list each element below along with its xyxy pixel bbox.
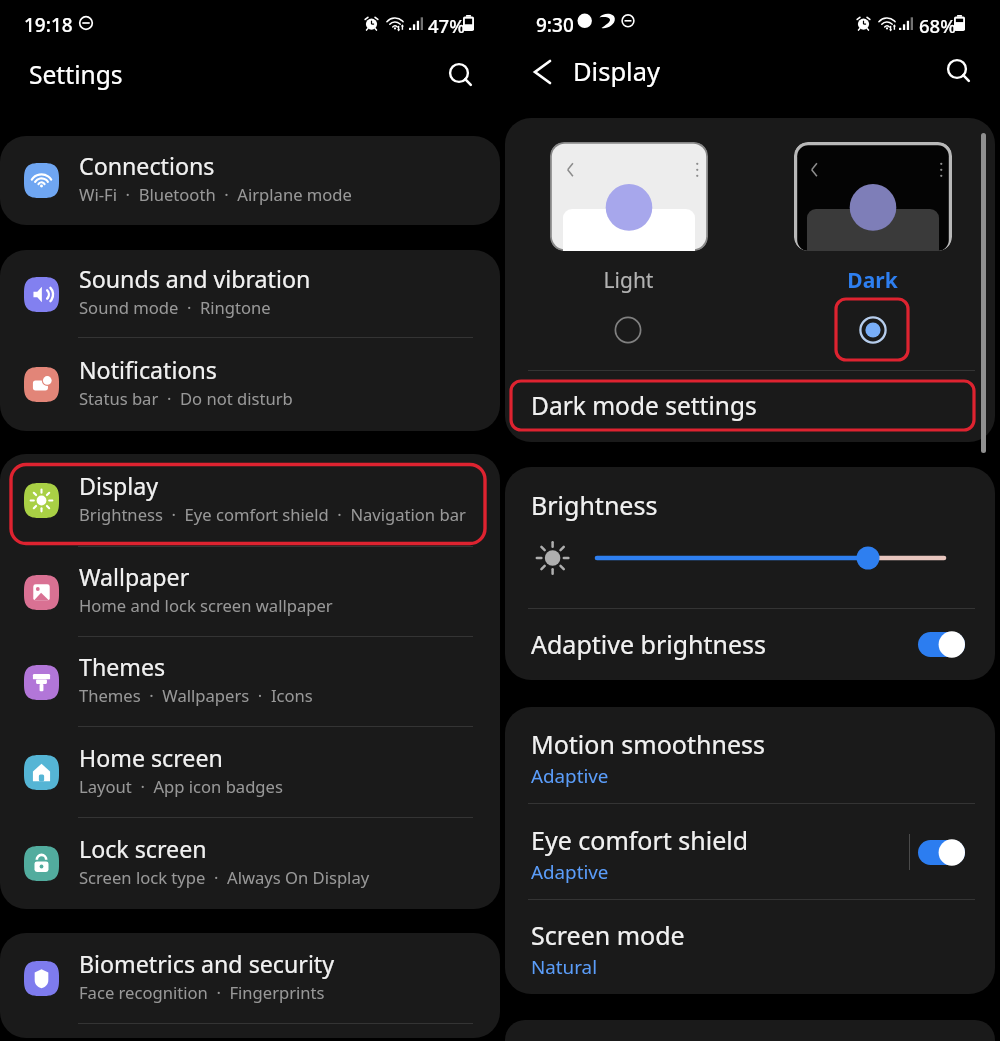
staticText: Adaptive brightness xyxy=(531,627,767,661)
staticText: Status bar · Do not disturb xyxy=(79,387,293,410)
staticText: Light xyxy=(550,266,707,295)
button[interactable]: Back xyxy=(521,50,565,94)
staticText: Dark xyxy=(794,266,951,295)
staticText: Screen lock type · Always On Display xyxy=(79,866,370,889)
staticText: Eye comfort shield xyxy=(531,823,749,857)
button[interactable]: Notifications xyxy=(0,338,500,431)
staticText: Layout · App icon badges xyxy=(79,775,283,798)
button[interactable]: Light theme xyxy=(605,307,651,353)
staticText: 47% xyxy=(428,13,465,38)
button[interactable]: Motion smoothness xyxy=(505,707,995,804)
staticText: Themes · Wallpapers · Icons xyxy=(79,684,313,707)
staticText: 19:18 xyxy=(24,12,73,38)
staticText: Notifications xyxy=(79,354,217,386)
staticText: Settings xyxy=(29,58,123,92)
staticText: Biometrics and security xyxy=(79,948,335,980)
staticText: Dark mode settings xyxy=(531,389,757,422)
staticText: Sound mode · Ringtone xyxy=(79,296,271,319)
button[interactable]: Search xyxy=(437,53,483,99)
staticText: Home screen xyxy=(79,742,223,774)
staticText: Home and lock screen wallpaper xyxy=(79,594,333,617)
button[interactable]: Screen mode xyxy=(505,900,995,994)
button[interactable]: Light theme preview xyxy=(550,142,708,251)
staticText: Motion smoothness xyxy=(531,727,765,761)
button[interactable]: Lock screen xyxy=(0,818,500,909)
button[interactable]: Adaptive brightness xyxy=(918,631,965,658)
button[interactable]: Dark theme preview xyxy=(794,142,952,251)
button[interactable]: Eye comfort shield xyxy=(505,804,995,900)
button[interactable]: Search xyxy=(935,49,981,95)
button[interactable]: Sounds and vibration xyxy=(0,250,500,338)
staticText: 9:30 xyxy=(536,12,574,38)
staticText: Wallpaper xyxy=(79,561,190,593)
button[interactable]: Biometrics and security xyxy=(0,933,500,1024)
button[interactable]: Display xyxy=(0,454,500,547)
staticText: Themes xyxy=(79,651,166,683)
staticText: Connections xyxy=(79,150,215,182)
staticText: Display xyxy=(573,54,660,89)
staticText: Brightness · Eye comfort shield · Naviga… xyxy=(79,503,466,526)
staticText: Display xyxy=(79,470,159,502)
staticText: Face recognition · Fingerprints xyxy=(79,981,325,1004)
staticText: Wi-Fi · Bluetooth · Airplane mode xyxy=(79,183,352,206)
button[interactable]: Themes xyxy=(0,637,500,727)
staticText: Screen mode xyxy=(531,918,685,952)
button[interactable]: Home screen xyxy=(0,727,500,818)
staticText: Adaptive xyxy=(531,763,609,789)
staticText: 68% xyxy=(919,13,956,38)
button[interactable]: Eye comfort shield xyxy=(918,839,965,866)
button[interactable]: Dark mode settings xyxy=(505,371,995,442)
staticText: Brightness xyxy=(531,488,658,522)
button[interactable]: Adaptive brightness xyxy=(505,609,995,680)
button[interactable]: Connections xyxy=(0,136,500,225)
staticText: Sounds and vibration xyxy=(79,263,311,295)
button[interactable]: Dark theme xyxy=(850,307,896,353)
staticText: Adaptive xyxy=(531,859,609,885)
staticText: Lock screen xyxy=(79,833,207,865)
button[interactable]: Wallpaper xyxy=(0,547,500,637)
staticText: Natural xyxy=(531,954,598,980)
